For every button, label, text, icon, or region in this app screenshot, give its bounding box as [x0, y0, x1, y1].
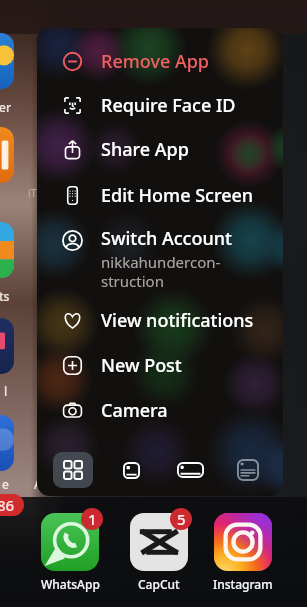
staticText: WhatsApp [41, 576, 100, 592]
button[interactable]: App icon [53, 452, 93, 488]
staticText: 1 [88, 509, 97, 529]
staticText: Instagram [213, 576, 273, 592]
staticText: CapCut [138, 576, 180, 592]
button[interactable]: Small widget [111, 452, 151, 488]
staticText: Camera [101, 398, 168, 423]
staticText: ts [0, 288, 10, 304]
staticText: er [0, 99, 11, 115]
staticText: Ap [34, 476, 50, 492]
staticText: Remove App [101, 49, 209, 74]
button[interactable]: Remove App [37, 40, 283, 82]
staticText: Edit Home Screen [101, 183, 254, 208]
button[interactable]: 1 [34, 508, 106, 594]
button[interactable]: 5 [123, 508, 195, 594]
staticText: New Post [101, 353, 182, 378]
button[interactable]: Require Face ID [37, 84, 283, 126]
staticText: nikkahundercon- struction [101, 252, 221, 290]
staticText: Require Face ID [101, 93, 236, 118]
staticText: Share App [101, 137, 189, 162]
staticText: l [4, 383, 8, 399]
button[interactable]: New Post [37, 344, 283, 386]
staticText: e [2, 476, 9, 492]
button[interactable]: Switch Account [37, 218, 283, 290]
button[interactable]: Large widget [228, 452, 268, 488]
staticText: Switch Account [101, 226, 232, 251]
button[interactable]: Share App [37, 128, 283, 170]
button[interactable]: Camera [37, 389, 283, 431]
button[interactable]: Instagram [207, 508, 279, 594]
button[interactable]: View notifications [37, 299, 283, 341]
staticText: iT [28, 186, 37, 200]
staticText: 5 [177, 509, 186, 529]
staticText: 86 [0, 495, 15, 515]
staticText: View notifications [101, 308, 254, 333]
button[interactable]: Edit Home Screen [37, 174, 283, 216]
button[interactable]: Medium widget [170, 452, 210, 488]
